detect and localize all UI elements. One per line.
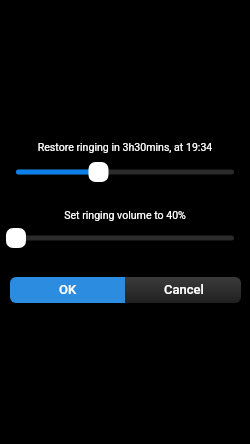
staticText: OK xyxy=(59,282,77,297)
button[interactable]: Restore ringing time xyxy=(0,158,250,186)
button[interactable]: Cancel xyxy=(125,277,241,303)
button[interactable]: Ringing volume xyxy=(0,224,250,252)
staticText: Cancel xyxy=(164,282,204,297)
staticText: Set ringing volume to 40% xyxy=(0,209,250,221)
button[interactable]: OK xyxy=(10,277,125,303)
staticText: Restore ringing in 3h30mins, at 19:34 xyxy=(0,141,250,153)
